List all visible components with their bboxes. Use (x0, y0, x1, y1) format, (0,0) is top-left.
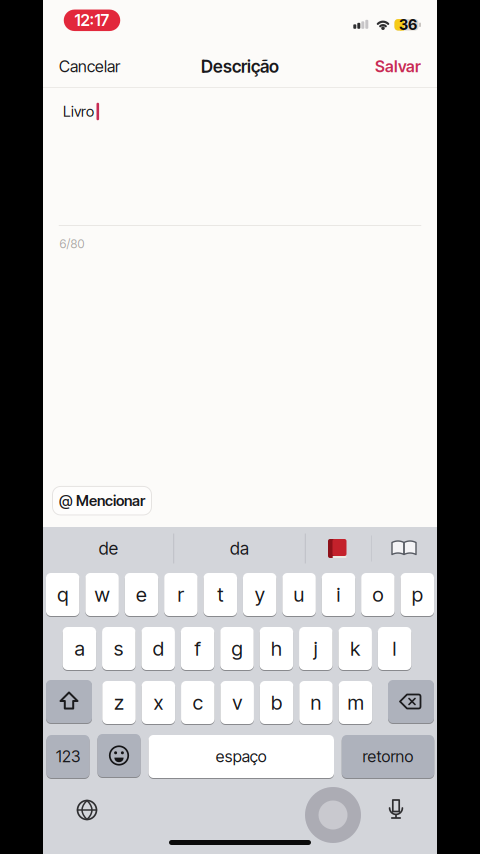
button[interactable]: da (179, 528, 299, 568)
button[interactable]: r (164, 572, 198, 617)
button[interactable]: Salvar (301, 51, 421, 81)
staticText: x (153, 691, 163, 714)
button[interactable]: c (181, 680, 215, 725)
button[interactable]: a (63, 626, 96, 671)
staticText: Mencionar (76, 492, 145, 509)
staticText: da (230, 538, 249, 559)
staticText: @ (59, 492, 73, 509)
staticText: t (217, 583, 223, 606)
staticText: o (372, 583, 383, 606)
staticText: c (193, 691, 203, 714)
button[interactable]: y (243, 572, 276, 617)
button[interactable]: Next keyboard (70, 793, 104, 827)
button[interactable]: retorno (342, 734, 434, 779)
staticText: 12:17 (74, 11, 109, 30)
button[interactable]: AssistiveTouch (305, 787, 361, 843)
button[interactable]: f (181, 626, 214, 671)
staticText: de (99, 538, 118, 559)
staticText: n (310, 691, 321, 714)
staticText: a (74, 637, 84, 660)
staticText: Descrição (201, 56, 279, 77)
button[interactable]: Cancelar (59, 51, 179, 81)
staticText: w (95, 583, 110, 606)
staticText: h (271, 637, 282, 660)
button[interactable]: Emoji (97, 734, 140, 779)
button[interactable]: u (282, 572, 316, 617)
button[interactable]: x (142, 680, 175, 725)
staticText: d (153, 637, 164, 660)
button[interactable]: de (48, 528, 168, 568)
button[interactable]: v (220, 680, 254, 725)
button[interactable]: n (299, 680, 333, 725)
button[interactable]: w (85, 572, 119, 617)
button[interactable]: q (46, 572, 79, 617)
staticText: p (412, 583, 423, 606)
staticText: Cancelar (59, 57, 120, 76)
button[interactable]: Red book emoji suggestion (323, 533, 353, 563)
button[interactable]: @ (52, 486, 152, 515)
button[interactable]: e (125, 572, 158, 617)
button[interactable]: t (204, 572, 237, 617)
button[interactable]: Open book emoji suggestion (389, 533, 419, 563)
staticText: u (294, 583, 305, 606)
staticText: s (114, 637, 124, 660)
button[interactable]: s (102, 626, 135, 671)
button[interactable]: o (361, 572, 395, 617)
button[interactable]: Dictation (379, 793, 413, 827)
staticText: j (314, 637, 318, 660)
button[interactable]: g (220, 626, 254, 671)
button[interactable]: 12:17 (64, 10, 120, 31)
staticText: g (231, 637, 242, 660)
button[interactable]: Delete (388, 680, 434, 725)
staticText: e (136, 583, 147, 606)
button[interactable]: m (339, 680, 372, 725)
staticText: z (114, 691, 124, 714)
staticText: m (347, 691, 363, 714)
button[interactable]: i (322, 572, 355, 617)
staticText: l (393, 637, 397, 660)
staticText: q (57, 583, 68, 606)
staticText: retorno (362, 747, 413, 766)
staticText: 36 (399, 16, 417, 33)
staticText: espaço (216, 747, 267, 766)
staticText: b (271, 691, 282, 714)
button[interactable]: k (338, 626, 372, 671)
staticText: k (350, 637, 360, 660)
staticText: Livro (63, 103, 94, 120)
button[interactable]: d (141, 626, 175, 671)
button[interactable]: j (299, 626, 333, 671)
button[interactable]: espaço (148, 734, 334, 779)
staticText: r (177, 583, 184, 606)
button[interactable]: h (260, 626, 293, 671)
staticText: f (195, 637, 201, 660)
button[interactable]: b (260, 680, 293, 725)
button[interactable]: Shift (46, 680, 92, 725)
staticText: v (232, 691, 242, 714)
staticText: y (255, 583, 265, 606)
button[interactable]: p (401, 572, 434, 617)
staticText: i (336, 583, 340, 606)
staticText: 123 (56, 747, 80, 766)
staticText: Salvar (375, 57, 421, 76)
staticText: 6/80 (59, 237, 84, 251)
button[interactable]: z (102, 680, 136, 725)
button[interactable]: 123 (46, 734, 89, 779)
button[interactable]: l (378, 626, 411, 671)
